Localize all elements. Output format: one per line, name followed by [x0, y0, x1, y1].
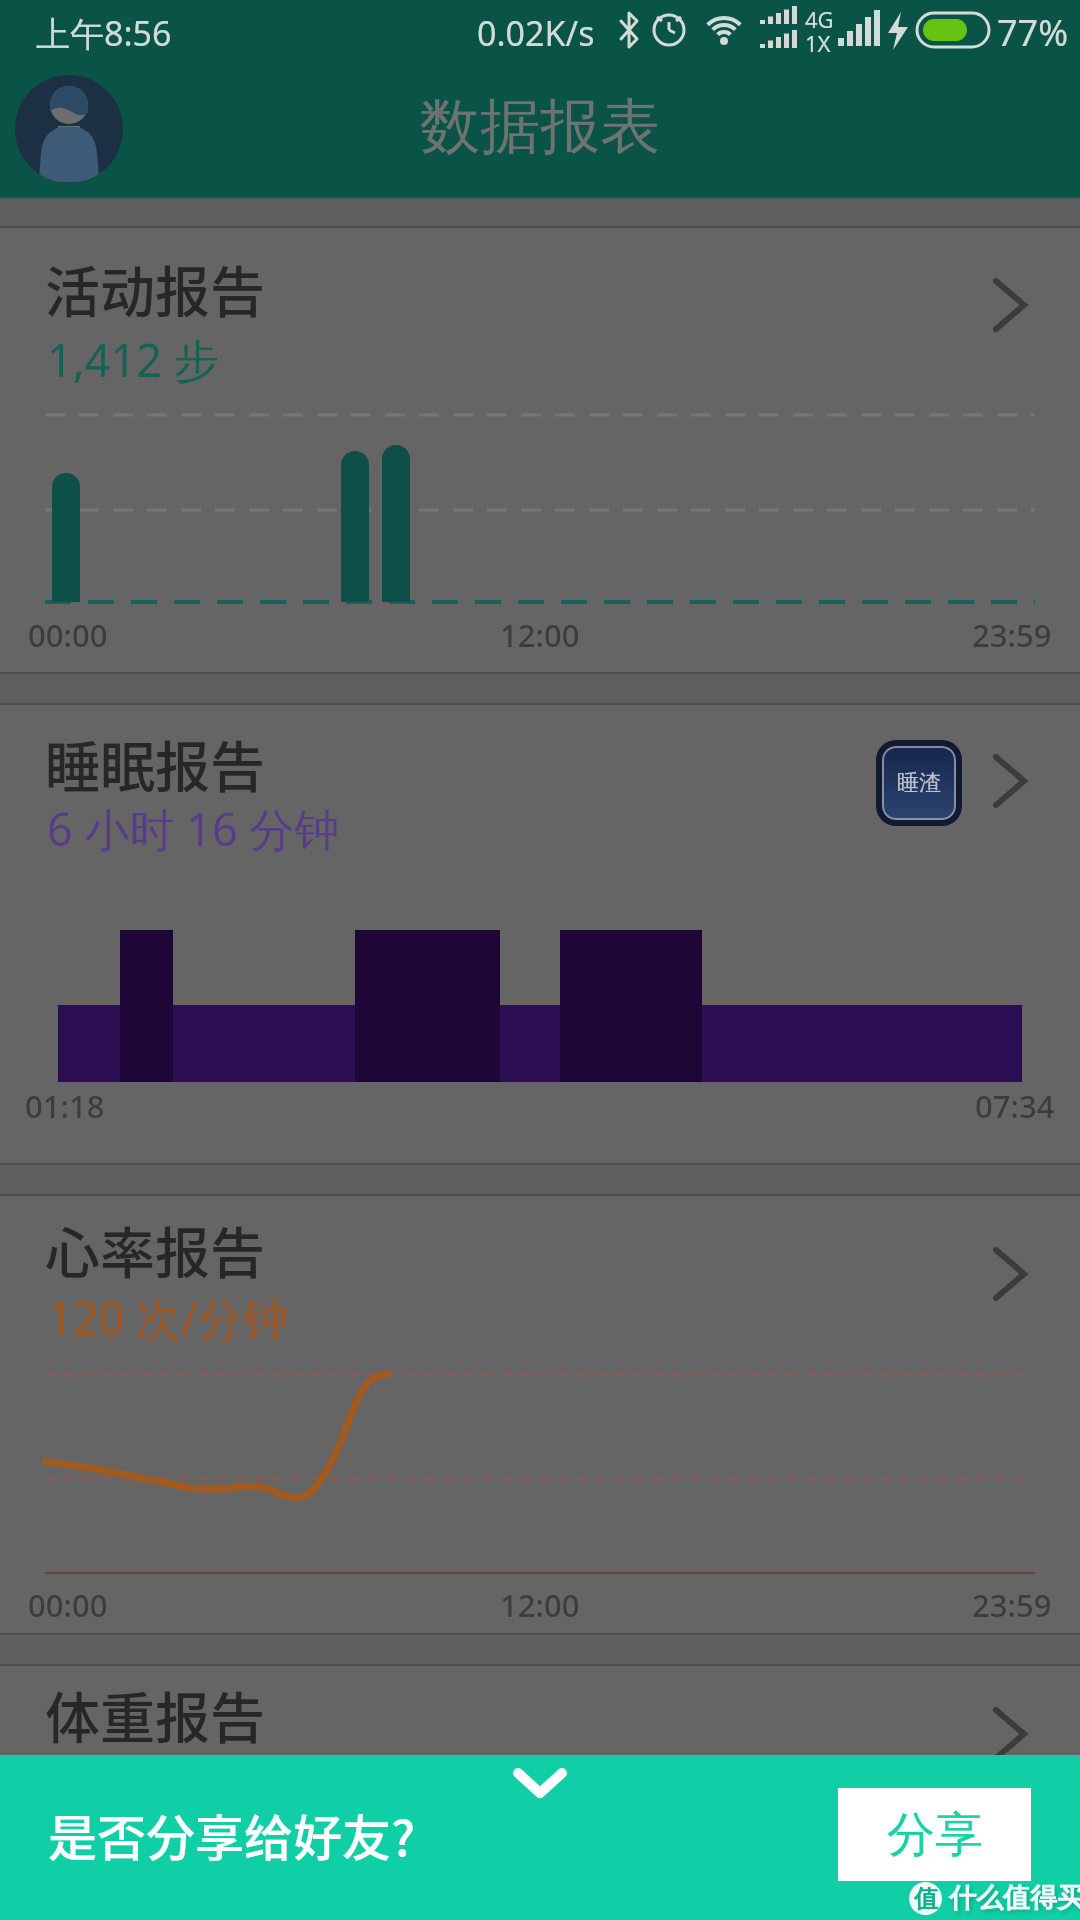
staticText: 数据报表 [420, 89, 660, 165]
staticText: 4G [805, 4, 834, 34]
staticText: 23:59 [972, 1584, 1052, 1626]
staticText: 0.02K/s [477, 10, 595, 56]
staticText: 6 小时 16 分钟 [47, 798, 340, 859]
staticText: 上午8:56 [36, 10, 172, 56]
button[interactable]: 睡渣 [876, 740, 962, 826]
staticText: 00:00 [28, 1584, 108, 1626]
staticText: 1,412 步 [47, 329, 219, 390]
staticText: 01:18 [25, 1085, 105, 1127]
staticText: 值 [914, 1884, 938, 1914]
button[interactable]: 分享 [838, 1788, 1031, 1881]
staticText: 是否分享给好友? [48, 1799, 416, 1870]
staticText: 睡渣 [897, 769, 941, 797]
button[interactable]: 心率报告 [45, 1209, 266, 1289]
staticText: 什么值得买 [949, 1881, 1080, 1915]
staticText: 07:34 [975, 1085, 1055, 1127]
staticText: 1X [805, 28, 831, 58]
staticText: 12:00 [500, 614, 580, 656]
button[interactable] [15, 75, 123, 183]
staticText: 120 次/分钟 [47, 1287, 288, 1348]
button[interactable]: 睡眠报告 [45, 723, 266, 803]
staticText: 77% [997, 8, 1069, 57]
button[interactable]: 体重报告 [45, 1674, 266, 1754]
staticText: 23:59 [972, 614, 1052, 656]
staticText: 分享 [887, 1805, 983, 1865]
button[interactable]: 活动报告 [45, 248, 266, 328]
staticText: 12:00 [500, 1584, 580, 1626]
staticText: 00:00 [28, 614, 108, 656]
